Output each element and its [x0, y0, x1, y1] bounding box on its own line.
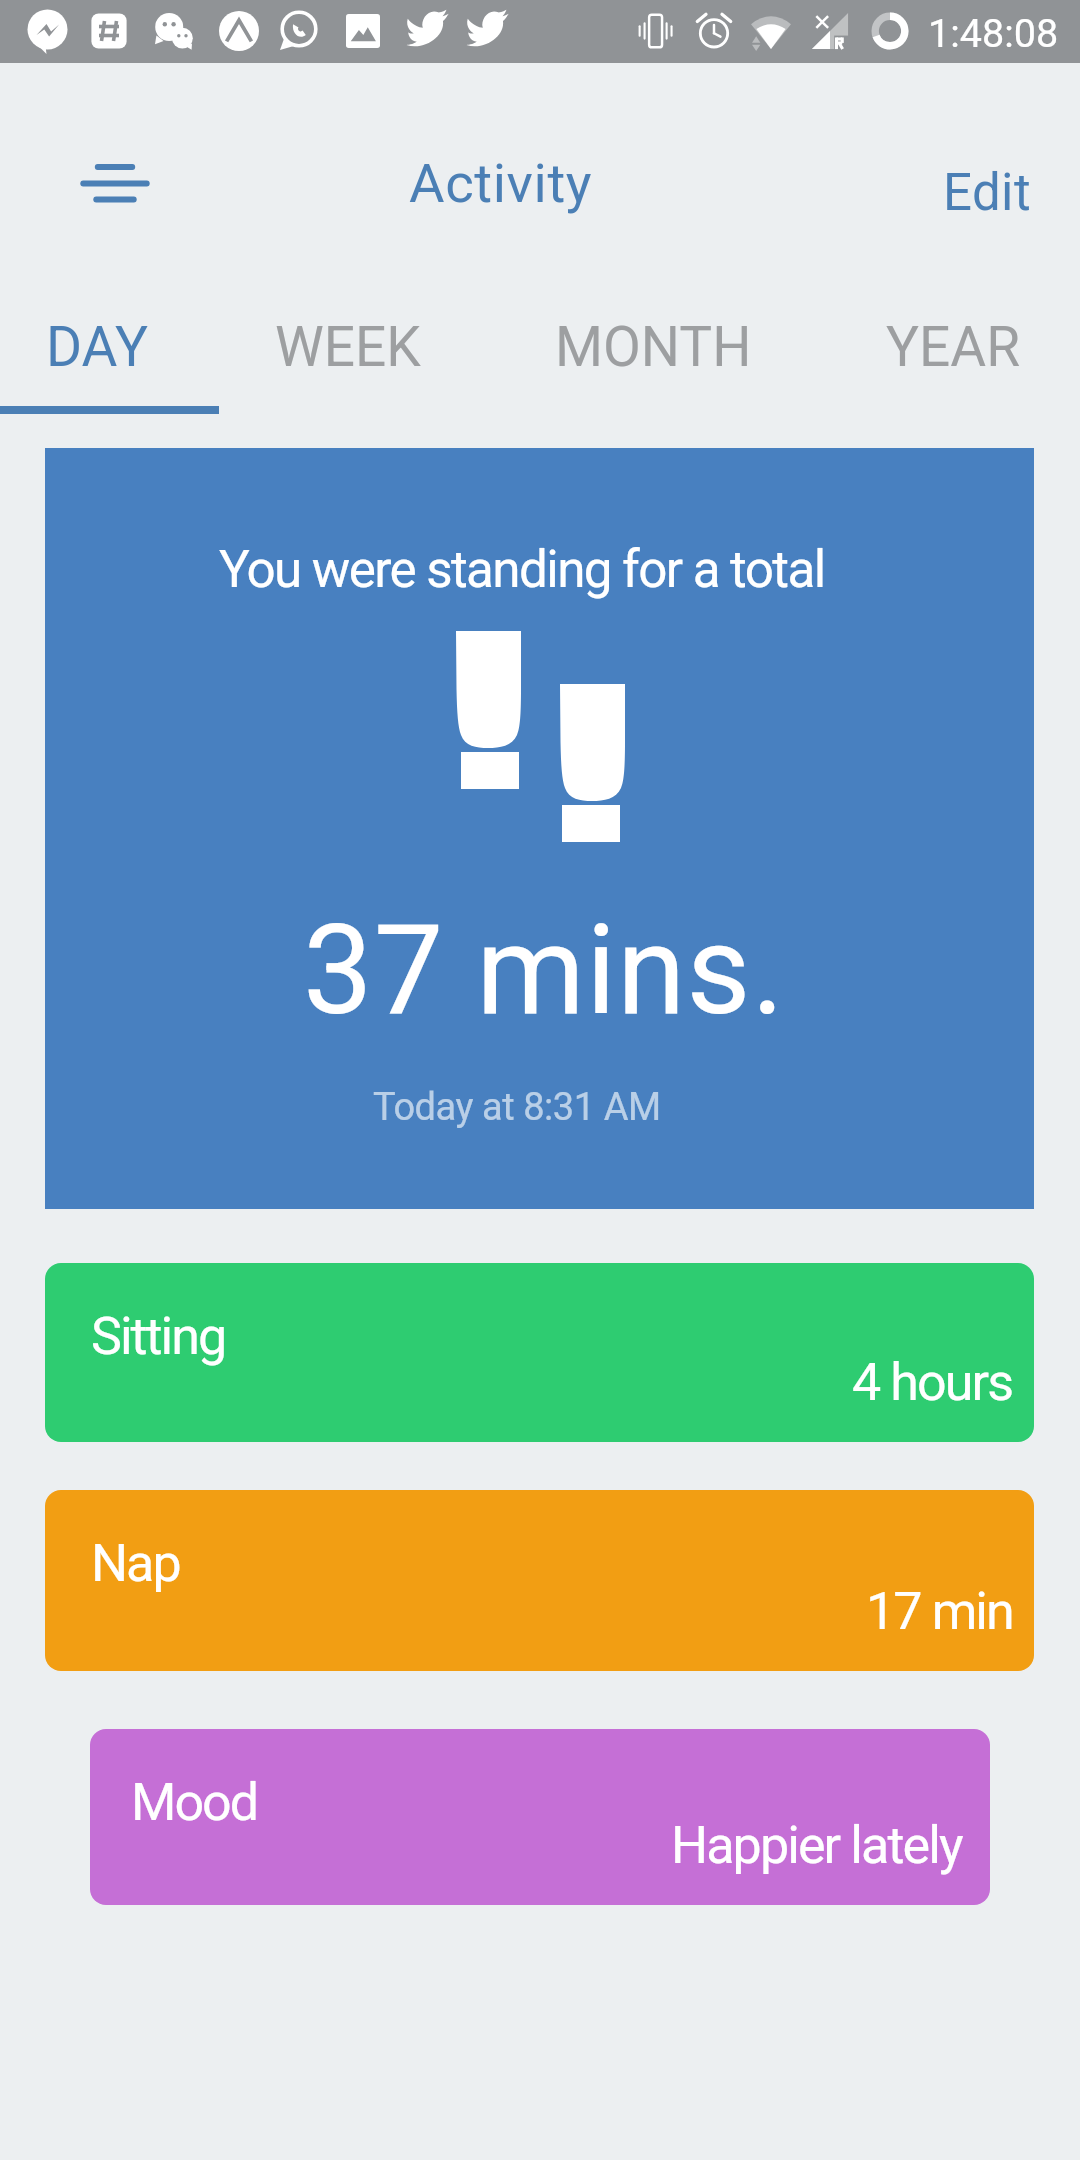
button[interactable]: MONTH — [504, 248, 803, 414]
staticText: You were standing for a total — [219, 539, 825, 599]
staticText: Sitting — [91, 1306, 226, 1367]
button[interactable]: Edit — [905, 123, 1055, 243]
staticText: MONTH — [555, 315, 752, 379]
staticText: 4 hours — [852, 1352, 1013, 1413]
staticText: Activity — [409, 151, 593, 215]
staticText: 37 mins. — [303, 898, 786, 1043]
button[interactable]: Menu — [55, 123, 175, 243]
staticText: DAY — [46, 315, 148, 379]
staticText: Happier lately — [671, 1815, 962, 1876]
button[interactable]: Mood — [90, 1729, 990, 1905]
button[interactable]: Sitting — [45, 1263, 1034, 1442]
staticText: WEEK — [275, 315, 421, 379]
staticText: 1:48:08 — [928, 10, 1059, 56]
button[interactable]: You were standing for a total — [45, 448, 1034, 1209]
staticText: YEAR — [886, 315, 1021, 379]
staticText: Nap — [91, 1533, 180, 1594]
staticText: Mood — [131, 1772, 258, 1833]
button[interactable]: DAY — [0, 248, 219, 414]
staticText: 17 min — [866, 1581, 1013, 1642]
button[interactable]: YEAR — [803, 248, 1080, 414]
staticText: Edit — [943, 163, 1031, 223]
button[interactable]: WEEK — [219, 248, 504, 414]
staticText: Today at 8:31 AM — [373, 1085, 661, 1130]
button[interactable]: Nap — [45, 1490, 1034, 1671]
